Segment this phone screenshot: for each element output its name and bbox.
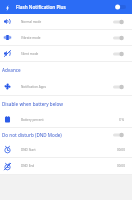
staticText: Battery percent — [21, 118, 44, 122]
button[interactable]: Battery percent — [0, 112, 132, 127]
staticText: Vibrate mode — [21, 36, 41, 40]
staticText: DND Start — [21, 148, 36, 152]
staticText: Silent mode — [21, 52, 39, 56]
button[interactable]: Toggle do not disturb — [113, 128, 132, 142]
staticText: Do not disturb (DND Mode) — [2, 132, 62, 138]
button[interactable]: Toggle Notification Apps — [113, 80, 132, 94]
button[interactable]: Enable flash notification — [113, 0, 132, 14]
button[interactable]: Notification Apps — [0, 78, 132, 95]
staticText: Flash Notification Plus — [16, 4, 66, 10]
staticText: 00:00 — [117, 148, 125, 152]
staticText: Advance — [2, 67, 21, 73]
staticText: Disable when battery below — [2, 101, 64, 107]
button[interactable]: Normal mode — [0, 14, 132, 29]
staticText: Normal mode — [21, 20, 42, 24]
staticText: X % — [119, 118, 125, 122]
button[interactable]: Toggle Normal mode — [113, 15, 132, 29]
button[interactable]: Flash — [4, 4, 11, 11]
button[interactable]: Toggle Silent mode — [113, 47, 132, 61]
button[interactable]: Toggle Vibrate mode — [113, 31, 132, 45]
button[interactable]: DND End — [0, 158, 132, 174]
button[interactable]: Silent mode — [0, 46, 132, 61]
button[interactable]: DND Start — [0, 142, 132, 157]
staticText: DND End — [21, 164, 35, 168]
button[interactable]: Vibrate mode — [0, 30, 132, 45]
staticText: 00:00 — [117, 164, 125, 168]
staticText: Notification Apps — [21, 85, 46, 89]
